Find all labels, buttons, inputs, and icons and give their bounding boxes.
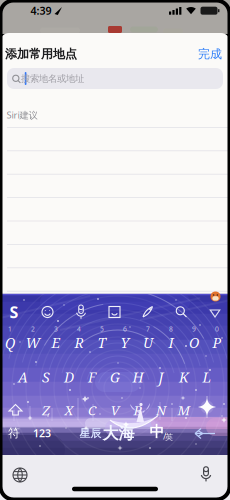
staticText: M	[177, 401, 190, 419]
staticText: 1	[8, 325, 12, 333]
button[interactable]: 删除	[196, 397, 220, 421]
staticText: B	[133, 401, 142, 419]
staticText: 7	[146, 325, 150, 333]
button[interactable]: I	[160, 328, 182, 356]
button[interactable]: 输入法	[5, 303, 23, 321]
staticText: G	[110, 367, 120, 387]
staticText: 2	[31, 325, 35, 333]
staticText: 完成	[198, 47, 222, 61]
button[interactable]: 手写	[140, 304, 156, 320]
button[interactable]: P	[206, 328, 228, 356]
button[interactable]: C	[81, 396, 103, 424]
staticText: S	[9, 301, 18, 323]
staticText: 9	[192, 325, 196, 333]
button[interactable]: 123	[29, 420, 55, 446]
staticText: P	[212, 333, 221, 352]
button[interactable]: Q	[0, 328, 21, 356]
staticText: 中	[149, 422, 164, 440]
button[interactable]: 空格	[74, 420, 140, 446]
button[interactable]: A	[12, 363, 34, 391]
staticText: 3	[54, 325, 58, 333]
staticText: X	[64, 401, 73, 419]
button[interactable]: X	[58, 396, 80, 424]
button[interactable]: 贴纸	[106, 304, 122, 320]
button[interactable]: 切换键盘	[12, 467, 28, 483]
staticText: 英	[165, 432, 173, 442]
button[interactable]: R	[68, 328, 90, 356]
button[interactable]: 完成	[193, 46, 227, 62]
button[interactable]: 活动	[209, 290, 221, 302]
staticText: /	[163, 430, 166, 442]
staticText: L	[202, 367, 211, 387]
staticText: W	[25, 333, 40, 352]
staticText: 6	[123, 325, 127, 333]
button[interactable]: H	[127, 363, 149, 391]
button[interactable]: 搜索地名或地址	[7, 68, 223, 89]
button[interactable]: 中英文切换	[146, 420, 174, 446]
staticText: F	[88, 367, 96, 387]
button[interactable]: V	[104, 396, 126, 424]
staticText: 大海	[102, 424, 134, 443]
button[interactable]: 表情	[39, 304, 55, 320]
button[interactable]: D	[58, 363, 80, 391]
button[interactable]: L	[196, 363, 218, 391]
staticText: A	[18, 367, 28, 387]
button[interactable]: W	[22, 328, 44, 356]
button[interactable]: U	[137, 328, 159, 356]
staticText: 添加常用地点	[5, 47, 77, 61]
staticText: E	[51, 333, 60, 352]
button[interactable]: E	[45, 328, 67, 356]
button[interactable]: G	[104, 363, 126, 391]
staticText: 123	[33, 426, 51, 440]
staticText: R	[74, 333, 83, 352]
button[interactable]: Z	[35, 396, 57, 424]
button[interactable]: B	[127, 396, 149, 424]
staticText: H	[132, 367, 143, 387]
staticText: T	[97, 333, 106, 352]
staticText: N	[156, 401, 166, 419]
staticText: Y	[120, 333, 129, 352]
staticText: U	[143, 333, 153, 352]
button[interactable]: O	[183, 328, 205, 356]
button[interactable]: 语音输入	[73, 304, 89, 320]
button[interactable]: N	[150, 396, 172, 424]
staticText: I	[168, 333, 173, 352]
button[interactable]: 换行	[194, 427, 216, 440]
button[interactable]: K	[173, 363, 195, 391]
button[interactable]: S	[35, 363, 57, 391]
button[interactable]: 听写	[198, 466, 214, 482]
button[interactable]: F	[81, 363, 103, 391]
button[interactable]: J	[150, 363, 172, 391]
staticText: 0	[215, 325, 219, 333]
staticText: 4	[77, 325, 81, 333]
staticText: K	[179, 367, 189, 387]
staticText: 符	[8, 426, 20, 440]
staticText: O	[189, 333, 199, 352]
staticText: Siri建议	[6, 109, 37, 121]
button[interactable]: 收起键盘	[207, 305, 223, 321]
staticText: D	[64, 367, 74, 387]
button[interactable]: 搜索	[173, 304, 189, 320]
staticText: 5	[100, 325, 104, 333]
staticText: J	[158, 367, 163, 387]
button[interactable]: 符	[2, 420, 26, 446]
button[interactable]: T	[91, 328, 113, 356]
button[interactable]: Shift	[7, 402, 23, 417]
staticText: Z	[42, 401, 50, 419]
staticText: Q	[5, 333, 15, 352]
button[interactable]: M	[173, 396, 195, 424]
button[interactable]: Y	[114, 328, 136, 356]
staticText: C	[88, 401, 96, 419]
staticText: 4:39	[30, 3, 51, 18]
staticText: V	[110, 401, 119, 419]
staticText: 8	[169, 325, 173, 333]
staticText: 搜索地名或地址	[21, 73, 84, 84]
staticText: S	[42, 367, 50, 387]
staticText: 星辰	[79, 427, 101, 440]
